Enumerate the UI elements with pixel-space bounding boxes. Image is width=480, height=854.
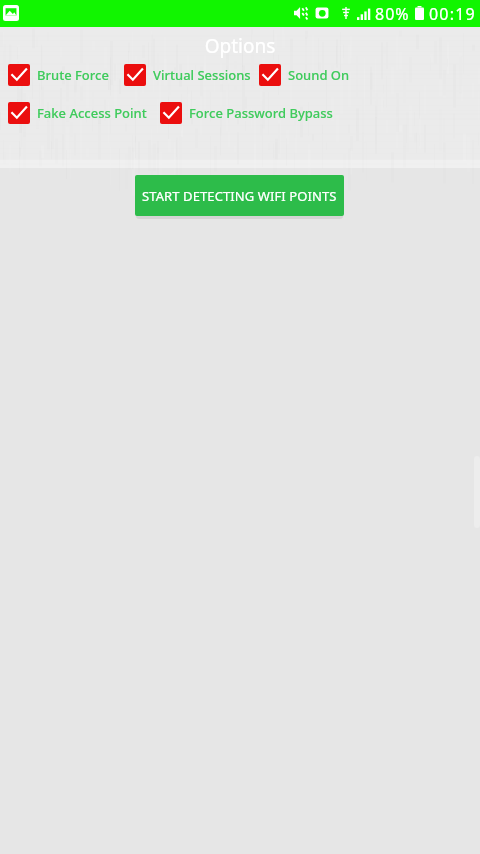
button[interactable]: START DETECTING WIFI POINTS [135,175,344,216]
button[interactable]: Fake Access Point [8,102,147,124]
staticText: 00:19 [429,3,476,25]
staticText: Sound On [288,66,350,84]
staticText: START DETECTING WIFI POINTS [142,187,337,205]
button[interactable]: Sound On [259,64,350,86]
button[interactable]: Force Password Bypass [160,102,333,124]
staticText: Brute Force [37,66,109,84]
button[interactable]: Virtual Sessions [124,64,251,86]
staticText: 80% [375,3,410,25]
staticText: Fake Access Point [37,104,147,122]
staticText: Virtual Sessions [153,66,251,84]
other: Gallery notification [3,5,19,21]
staticText: Force Password Bypass [189,104,333,122]
staticText: Options [0,33,480,59]
button[interactable]: Brute Force [8,64,109,86]
